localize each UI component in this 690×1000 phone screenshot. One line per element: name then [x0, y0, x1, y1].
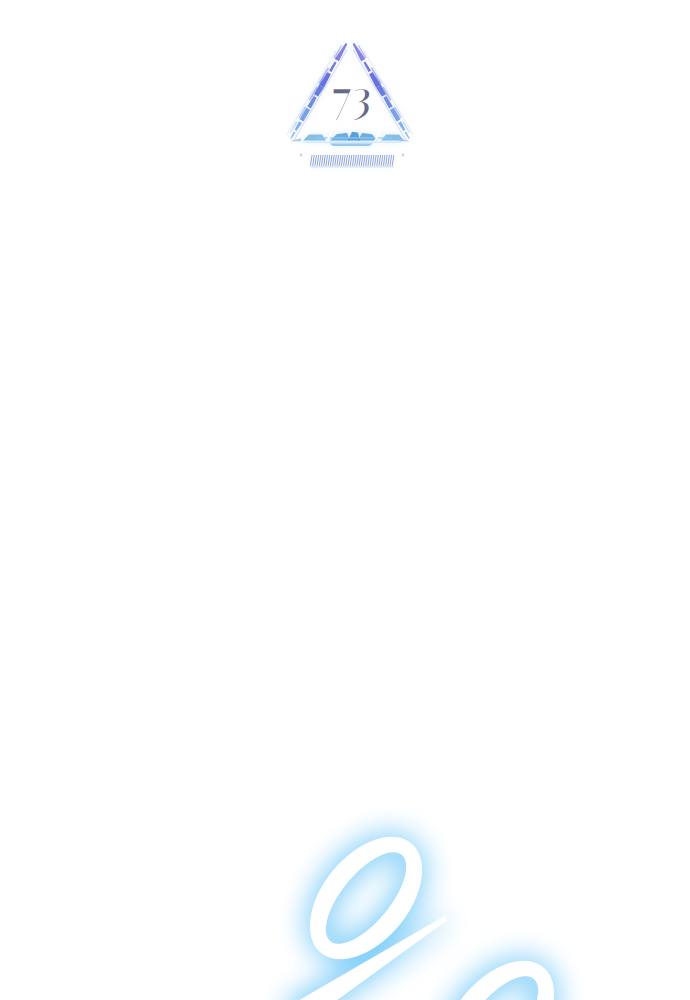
staticText: 73: [331, 67, 372, 128]
